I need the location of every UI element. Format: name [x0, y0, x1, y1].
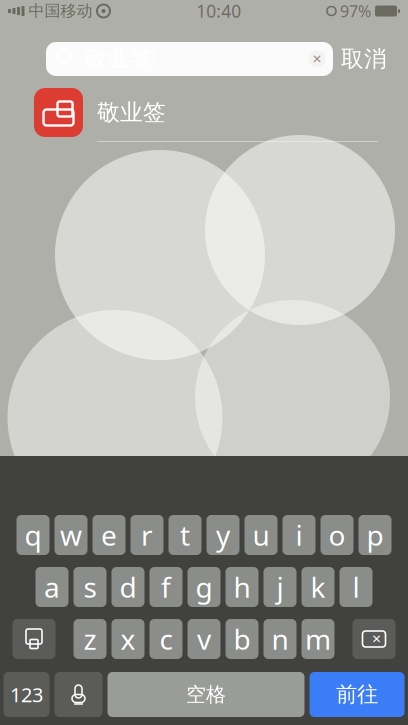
- button[interactable]: v: [187, 619, 220, 659]
- staticText: h: [233, 568, 250, 606]
- button[interactable]: s: [73, 567, 106, 607]
- staticText: b: [233, 620, 250, 658]
- button[interactable]: x: [111, 619, 144, 659]
- button[interactable]: Shift: [12, 619, 55, 659]
- button[interactable]: j: [263, 567, 296, 607]
- staticText: x: [120, 620, 135, 658]
- button[interactable]: 前往: [309, 672, 404, 717]
- staticText: d: [119, 568, 136, 606]
- button[interactable]: y: [206, 515, 239, 555]
- staticText: ✕: [371, 632, 381, 646]
- button[interactable]: l: [339, 567, 372, 607]
- button[interactable]: w: [54, 515, 87, 555]
- button[interactable]: p: [358, 515, 391, 555]
- staticText: ✕: [312, 52, 322, 66]
- staticText: w: [60, 516, 82, 554]
- button[interactable]: 123: [3, 672, 49, 717]
- button[interactable]: u: [244, 515, 277, 555]
- staticText: n: [271, 620, 288, 658]
- staticText: t: [180, 516, 190, 554]
- staticText: z: [83, 620, 96, 658]
- staticText: 空格: [186, 682, 226, 707]
- staticText: v: [197, 620, 211, 658]
- staticText: 10:40: [196, 0, 241, 22]
- staticText: q: [24, 516, 41, 554]
- staticText: o: [328, 516, 345, 554]
- button[interactable]: 取消: [333, 42, 395, 76]
- button[interactable]: h: [225, 567, 258, 607]
- staticText: s: [83, 568, 96, 606]
- button[interactable]: n: [263, 619, 296, 659]
- staticText: p: [366, 516, 383, 554]
- button[interactable]: 敬业签: [0, 84, 408, 142]
- button[interactable]: t: [168, 515, 201, 555]
- staticText: i: [295, 516, 302, 554]
- button[interactable]: r: [130, 515, 163, 555]
- staticText: 取消: [341, 45, 387, 73]
- button[interactable]: i: [282, 515, 315, 555]
- staticText: l: [352, 568, 359, 606]
- staticText: m: [305, 620, 331, 658]
- button[interactable]: g: [187, 567, 220, 607]
- staticText: 中国移动: [28, 1, 92, 21]
- button[interactable]: c: [149, 619, 182, 659]
- button[interactable]: 空格: [107, 672, 304, 717]
- staticText: a: [44, 568, 60, 606]
- staticText: 123: [10, 681, 43, 708]
- staticText: 敬业签: [97, 99, 166, 126]
- button[interactable]: b: [225, 619, 258, 659]
- button[interactable]: a: [35, 567, 68, 607]
- button[interactable]: e: [92, 515, 125, 555]
- staticText: f: [161, 568, 171, 606]
- button[interactable]: k: [301, 567, 334, 607]
- button[interactable]: q: [16, 515, 49, 555]
- button[interactable]: o: [320, 515, 353, 555]
- button[interactable]: m: [301, 619, 334, 659]
- button[interactable]: Delete: [352, 619, 395, 659]
- staticText: 97%: [340, 0, 371, 22]
- staticText: r: [141, 516, 153, 554]
- button[interactable]: d: [111, 567, 144, 607]
- button[interactable]: Clear text: [301, 42, 333, 76]
- staticText: e: [101, 516, 117, 554]
- staticText: u: [252, 516, 269, 554]
- staticText: 前往: [336, 681, 378, 708]
- staticText: c: [159, 620, 172, 658]
- button[interactable]: Dictation: [54, 672, 102, 717]
- staticText: y: [216, 516, 230, 554]
- staticText: k: [310, 568, 325, 606]
- button[interactable]: f: [149, 567, 182, 607]
- staticText: j: [276, 568, 283, 606]
- button[interactable]: z: [73, 619, 106, 659]
- staticText: g: [195, 568, 212, 606]
